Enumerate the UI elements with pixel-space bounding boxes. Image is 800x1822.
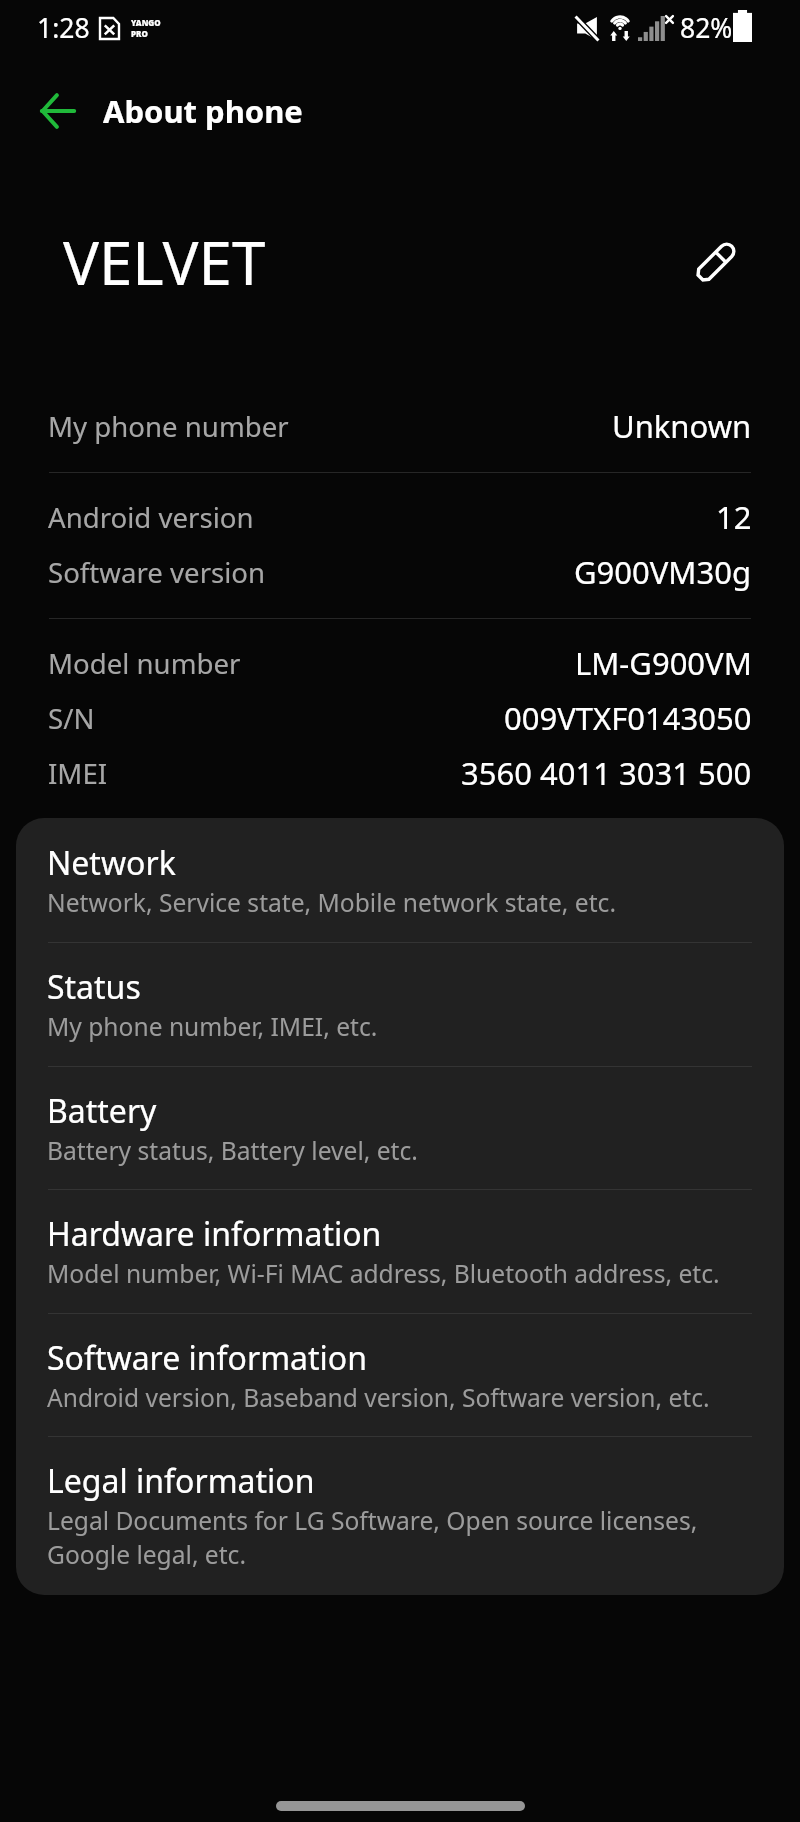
staticText: 12 [716, 496, 752, 538]
staticText: IMEI [48, 754, 108, 792]
staticText: Legal Documents for LG Software, Open so… [47, 1504, 734, 1572]
staticText: YANGO [131, 17, 161, 28]
staticText: Network [47, 841, 176, 885]
staticText: About phone [103, 90, 303, 132]
button[interactable]: Battery [16, 1066, 784, 1189]
staticText: Status [47, 965, 141, 1009]
staticText: 009VTXF0143050 [504, 697, 752, 739]
staticText: Legal information [47, 1459, 315, 1503]
staticText: S/N [48, 699, 95, 737]
button[interactable]: Edit device name [686, 231, 746, 291]
button[interactable]: Status [16, 942, 784, 1066]
button[interactable]: Back [27, 80, 89, 142]
staticText: Model number [48, 644, 241, 682]
staticText: Model number, Wi-Fi MAC address, Bluetoo… [47, 1257, 720, 1291]
staticText: Unknown [612, 405, 752, 447]
button[interactable]: Software information [16, 1313, 784, 1436]
button[interactable]: Hardware information [16, 1189, 784, 1313]
staticText: G900VM30g [574, 551, 752, 593]
staticText: 82% [680, 10, 733, 46]
staticText: VELVET [63, 221, 266, 303]
staticText: Software information [47, 1336, 367, 1380]
staticText: Network, Service state, Mobile network s… [47, 886, 617, 920]
staticText: Hardware information [47, 1212, 382, 1256]
staticText: Battery [47, 1089, 157, 1133]
staticText: My phone number [48, 407, 289, 445]
button[interactable]: Legal information [16, 1436, 784, 1595]
staticText: Android version, Baseband version, Softw… [47, 1381, 710, 1415]
button[interactable]: Network [16, 818, 784, 942]
staticText: LM-G900VM [575, 642, 752, 684]
staticText: 3560 4011 3031 500 [461, 752, 752, 794]
staticText: 1:28 [37, 10, 90, 46]
staticText: Android version [48, 498, 254, 536]
staticText: My phone number, IMEI, etc. [47, 1010, 378, 1044]
staticText: Software version [48, 553, 266, 591]
staticText: PRO [131, 28, 148, 39]
staticText: Battery status, Battery level, etc. [47, 1134, 418, 1168]
